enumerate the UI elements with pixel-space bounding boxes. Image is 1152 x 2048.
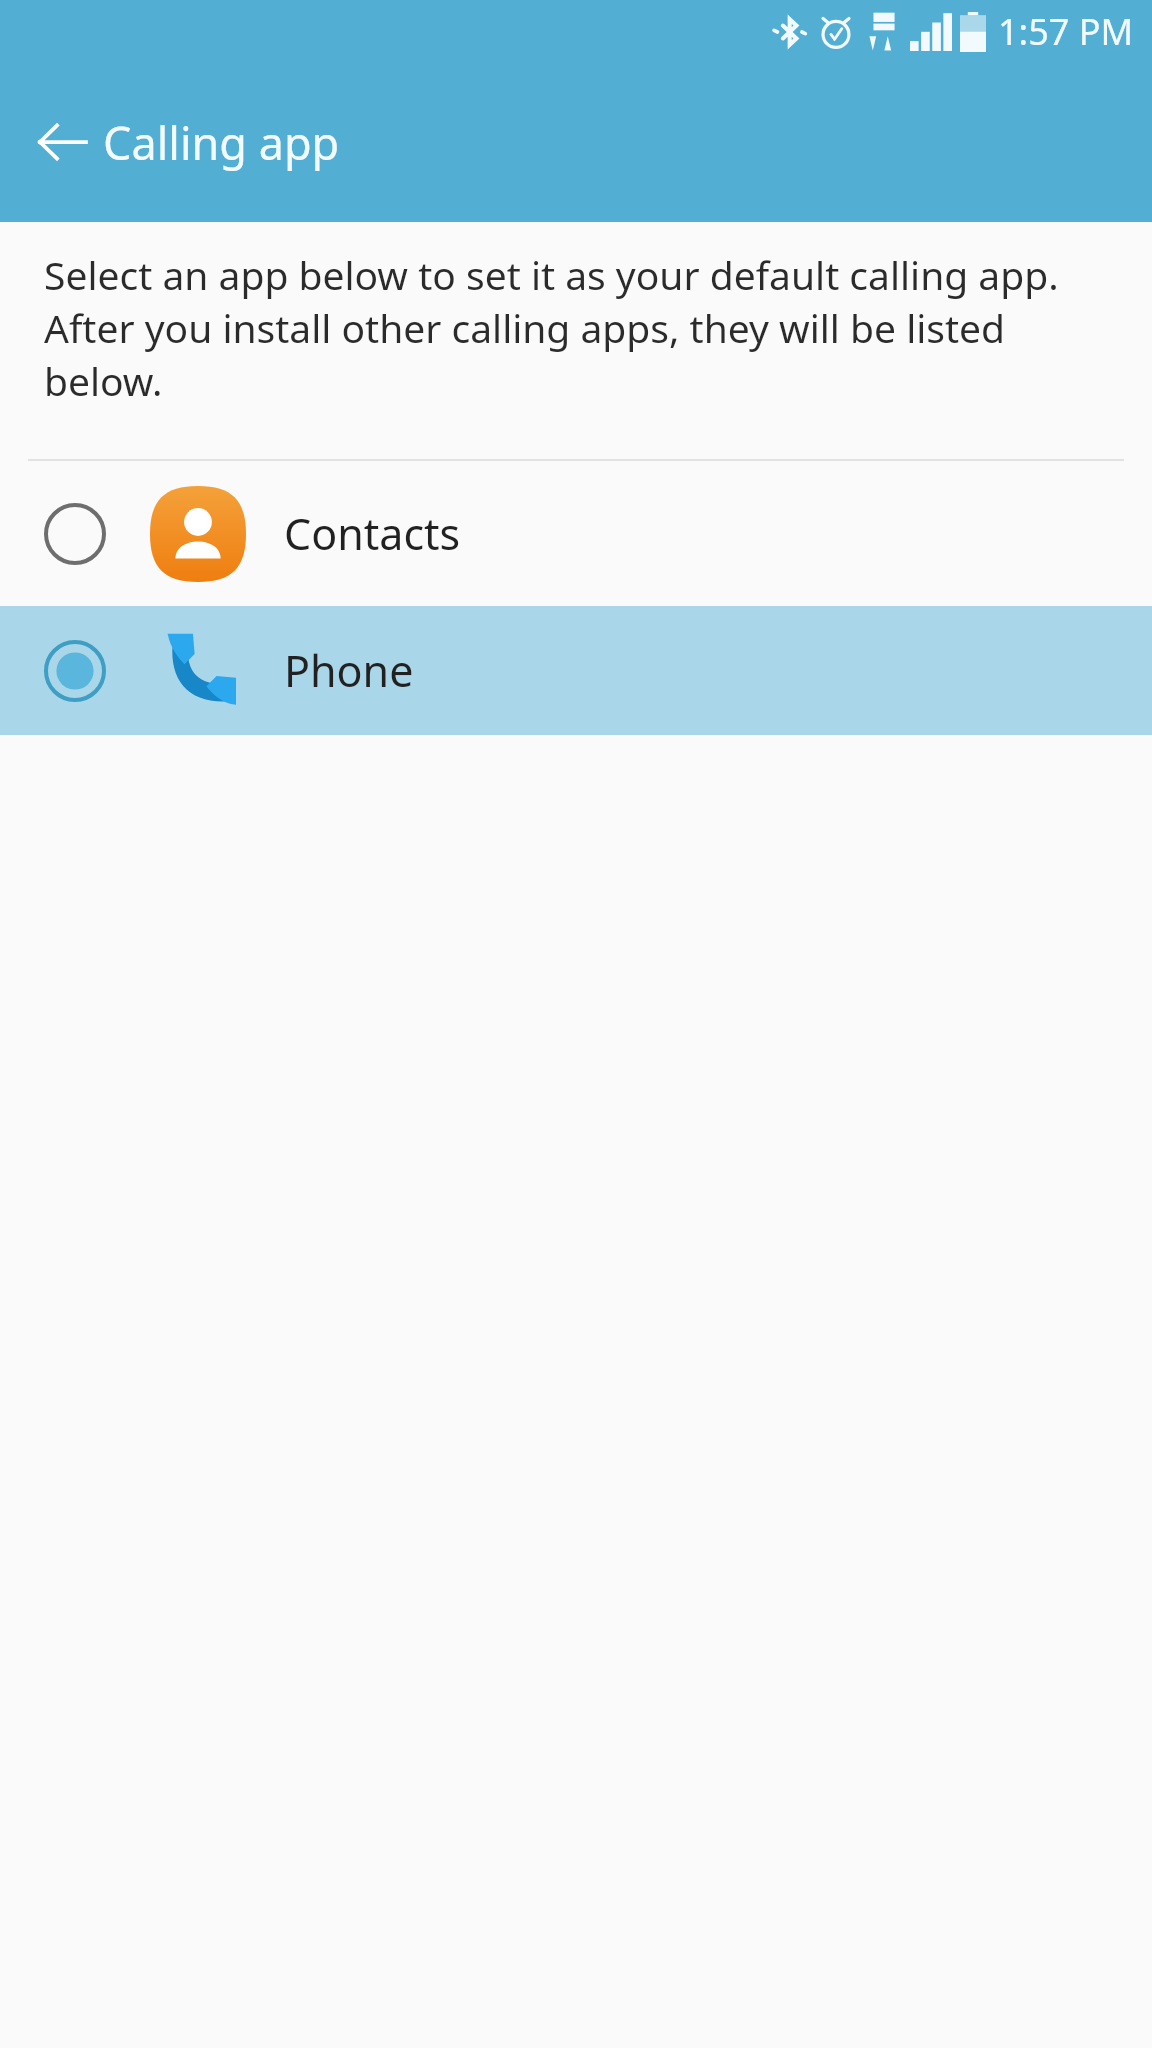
staticText: 1:57 PM (998, 7, 1134, 56)
staticText: Select an app below to set it as your de… (44, 248, 1100, 407)
button[interactable]: Contacts (0, 461, 1152, 606)
staticText: Phone (284, 641, 414, 700)
staticText: Contacts (284, 504, 461, 563)
button[interactable]: Phone (0, 606, 1152, 735)
staticText: Calling app (103, 112, 340, 173)
button[interactable]: Back (14, 94, 110, 190)
